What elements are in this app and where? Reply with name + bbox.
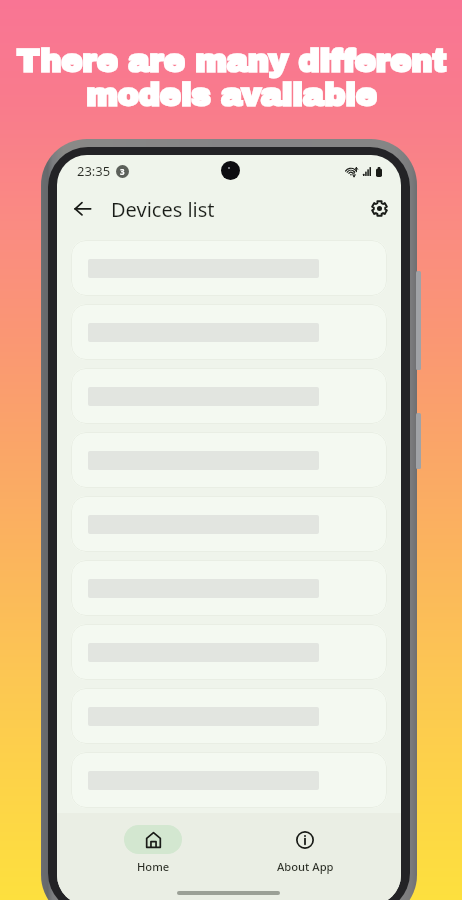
staticText: 23:35 bbox=[77, 162, 111, 180]
button[interactable] bbox=[71, 816, 387, 872]
button[interactable] bbox=[71, 240, 387, 296]
button[interactable]: Back bbox=[65, 191, 99, 225]
staticText: There are many different models availabl… bbox=[16, 44, 446, 112]
button[interactable] bbox=[71, 304, 387, 360]
staticText: Devices list bbox=[111, 196, 215, 223]
button[interactable] bbox=[71, 688, 387, 744]
button[interactable]: Home bbox=[93, 813, 213, 874]
staticText: About App bbox=[277, 859, 334, 874]
button[interactable] bbox=[71, 368, 387, 424]
button[interactable] bbox=[71, 624, 387, 680]
button[interactable] bbox=[71, 496, 387, 552]
button[interactable] bbox=[71, 432, 387, 488]
button[interactable] bbox=[71, 752, 387, 808]
button[interactable]: About App bbox=[245, 813, 365, 874]
button[interactable] bbox=[71, 560, 387, 616]
staticText: 3 bbox=[120, 166, 125, 177]
staticText: Home bbox=[137, 859, 170, 874]
button[interactable]: Settings bbox=[362, 191, 396, 225]
